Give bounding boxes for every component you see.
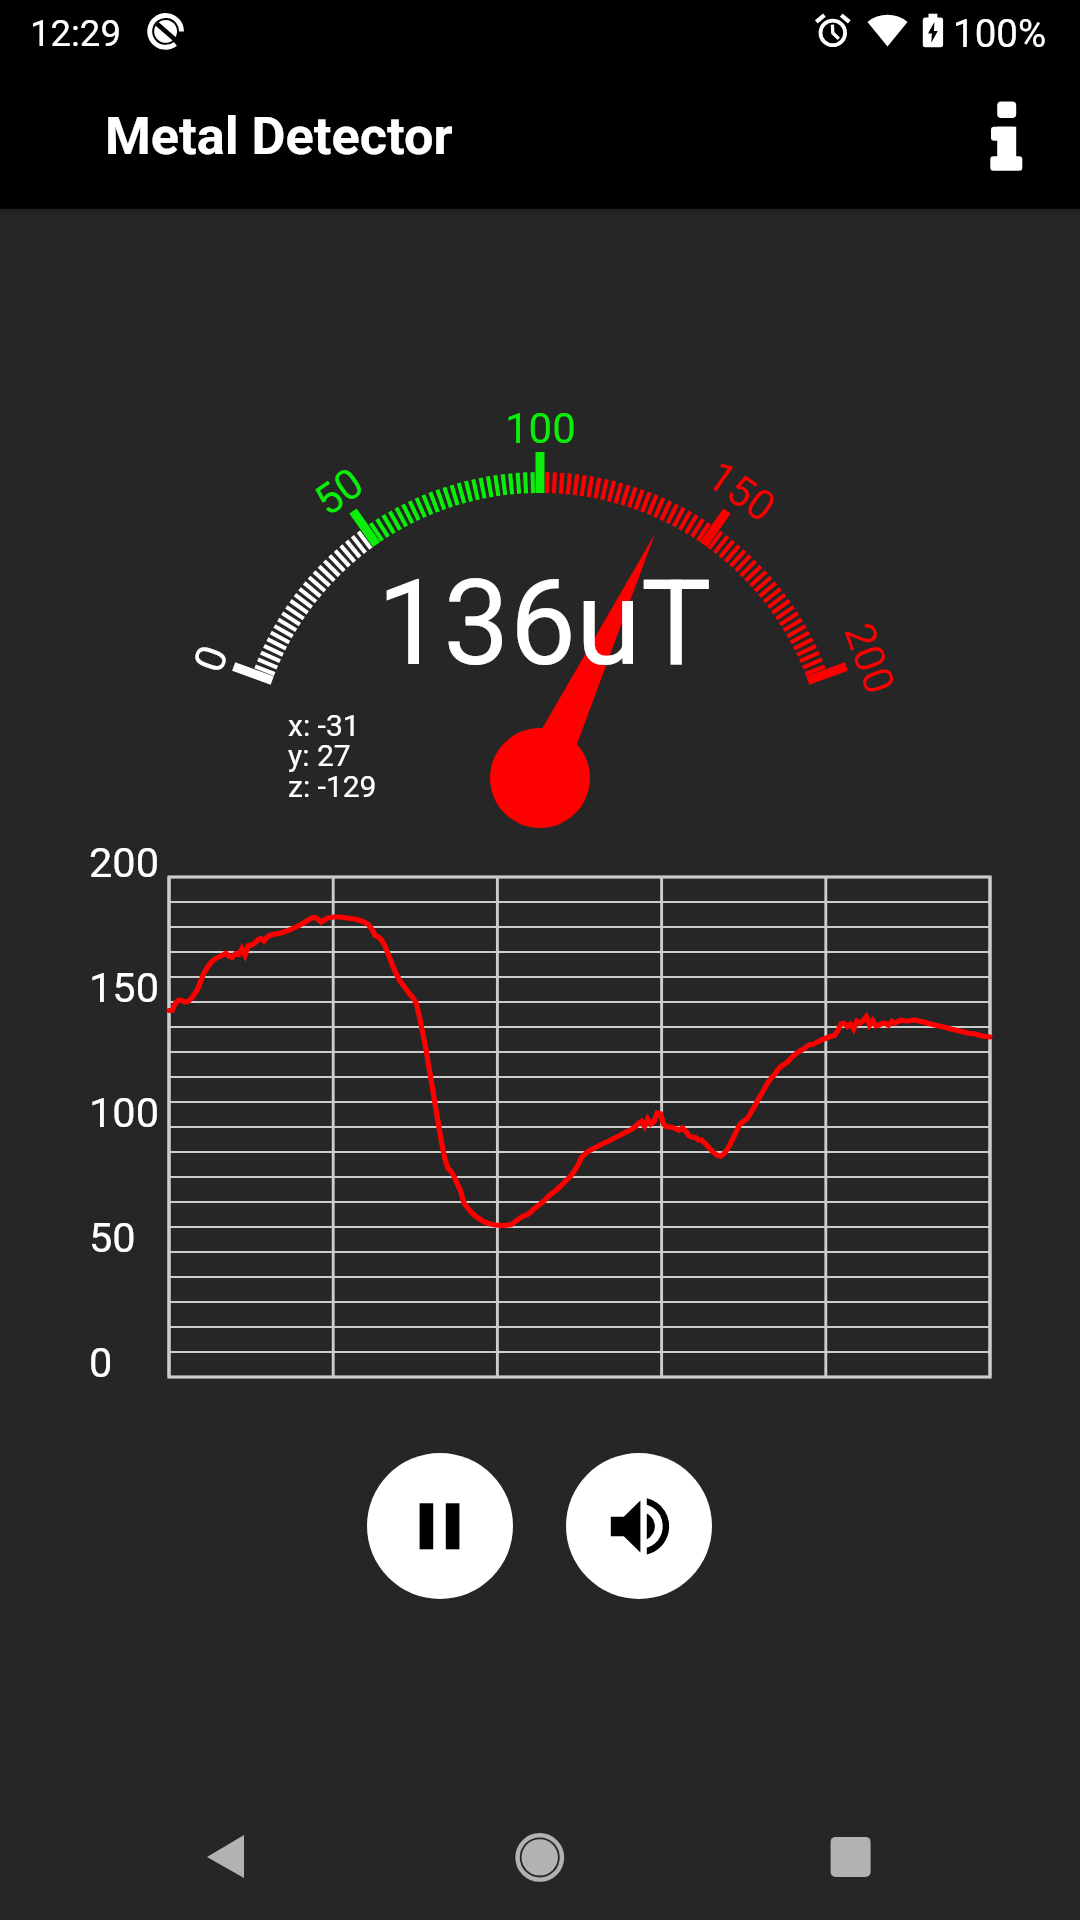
staticText: 0	[89, 1338, 113, 1387]
staticText: x: -31 y: 27 z: -129	[288, 708, 377, 804]
staticText: 136uT	[377, 555, 712, 693]
button[interactable]: Back	[180, 1800, 300, 1920]
staticText: 200	[834, 617, 905, 700]
staticText: Metal Detector	[105, 105, 453, 166]
button[interactable]: Pause	[367, 1453, 513, 1599]
staticText: 0	[184, 639, 238, 678]
button[interactable]: Home	[480, 1800, 600, 1920]
button[interactable]: Recents	[790, 1800, 910, 1920]
staticText: 150	[698, 451, 785, 532]
staticText: 50	[305, 458, 373, 525]
button[interactable]: Info	[945, 84, 1075, 194]
staticText: 100%	[953, 11, 1047, 56]
staticText: 150	[89, 963, 159, 1012]
staticText: 100	[89, 1088, 159, 1137]
staticText: 100	[505, 404, 576, 453]
staticText: 200	[89, 838, 159, 887]
staticText: 50	[89, 1213, 136, 1262]
staticText: 12:29	[30, 12, 121, 55]
button[interactable]: Sound	[566, 1453, 712, 1599]
